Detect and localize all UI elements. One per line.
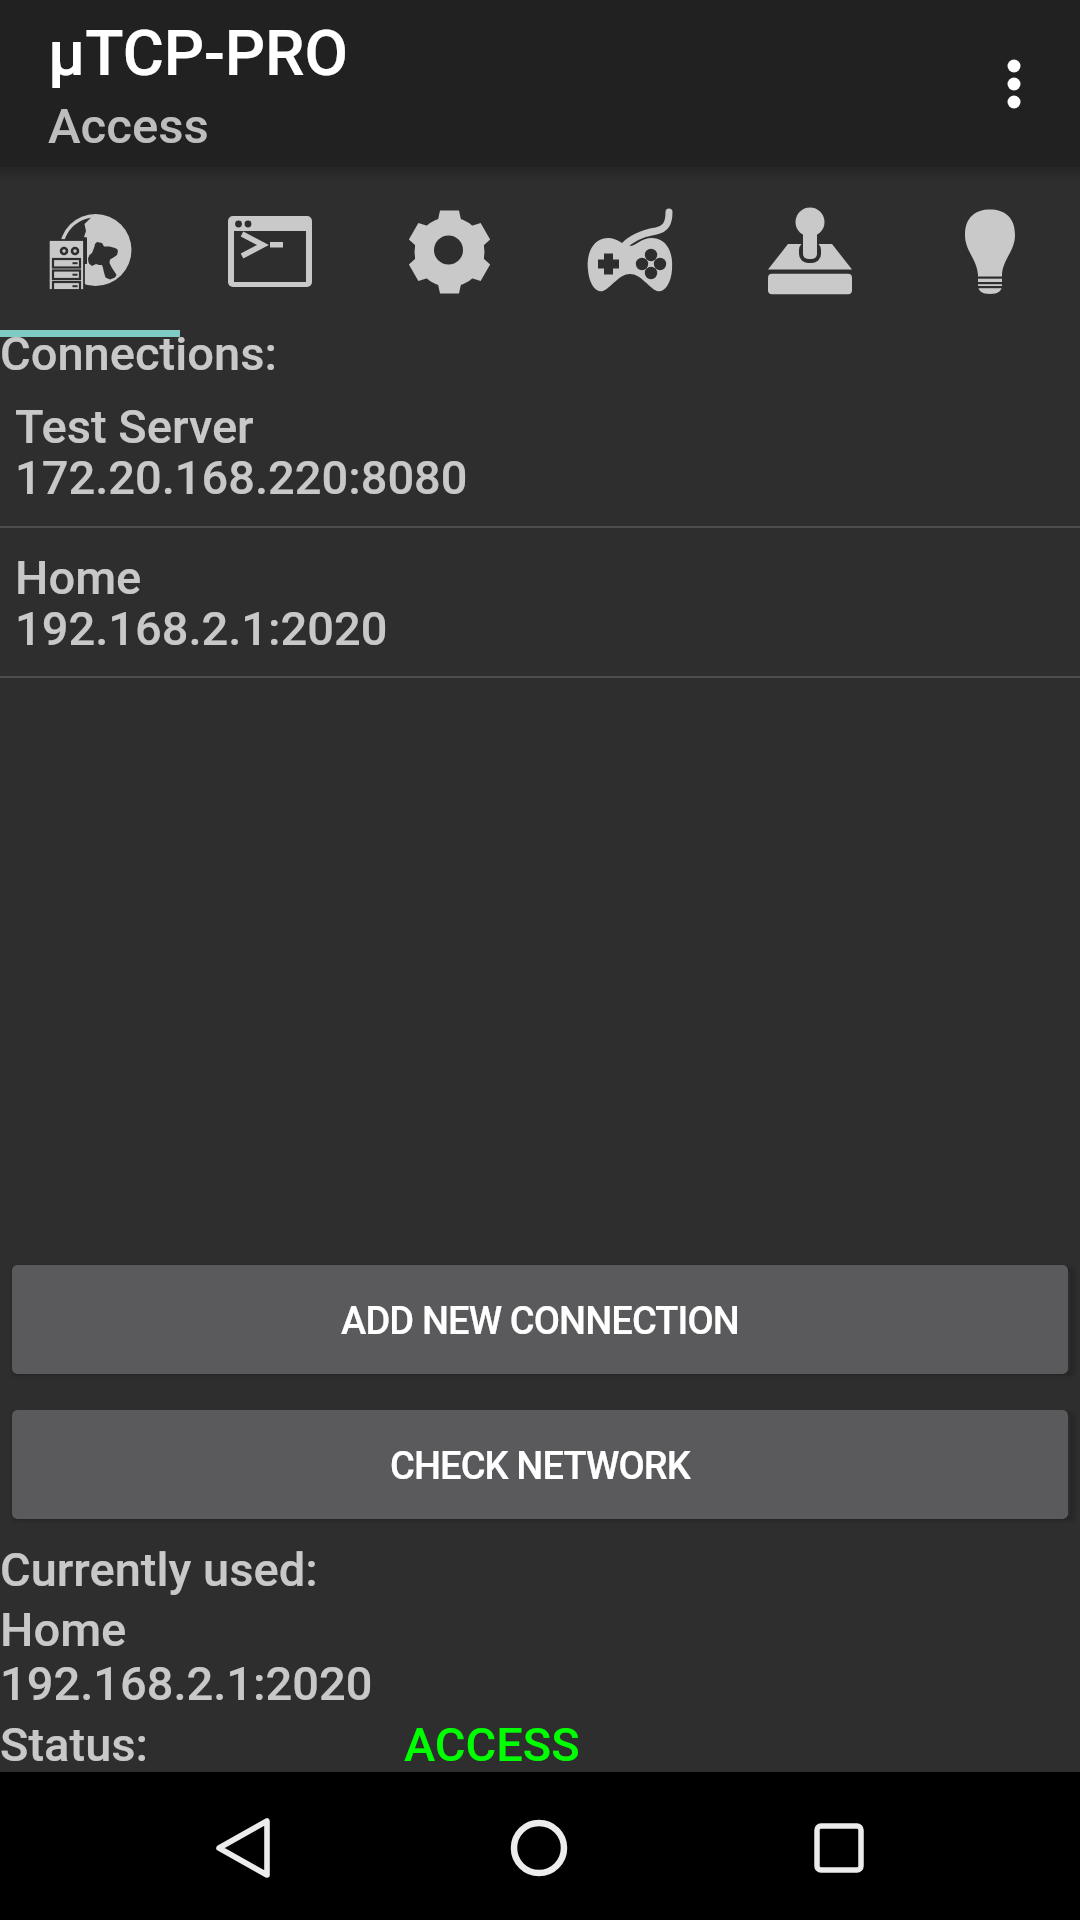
- staticText: Status:: [0, 1717, 148, 1772]
- button[interactable]: Test Server: [0, 377, 1080, 526]
- button[interactable]: Home: [0, 528, 1080, 677]
- button[interactable]: Joystick: [720, 167, 900, 336]
- button[interactable]: ADD NEW CONNECTION: [12, 1265, 1068, 1374]
- button[interactable]: Recent apps: [749, 1772, 929, 1920]
- button[interactable]: Light: [900, 167, 1080, 336]
- button[interactable]: Home: [449, 1772, 629, 1920]
- staticText: Test Server: [15, 399, 254, 454]
- button[interactable]: More options: [986, 38, 1042, 94]
- button[interactable]: Terminal: [180, 167, 360, 336]
- staticText: Home: [15, 550, 142, 605]
- staticText: Access: [48, 98, 209, 155]
- button[interactable]: CHECK NETWORK: [12, 1410, 1068, 1519]
- button[interactable]: Gamepad: [540, 167, 720, 336]
- staticText: 192.168.2.1:2020: [0, 1656, 373, 1711]
- button[interactable]: Servers: [0, 167, 180, 336]
- staticText: Home: [0, 1602, 127, 1657]
- button[interactable]: Settings: [360, 167, 540, 336]
- staticText: CHECK NETWORK: [390, 1444, 690, 1489]
- staticText: Connections:: [0, 326, 277, 381]
- staticText: µTCP-PRO: [48, 17, 348, 91]
- staticText: ACCESS: [404, 1717, 580, 1772]
- staticText: Currently used:: [0, 1542, 318, 1597]
- staticText: 192.168.2.1:2020: [15, 601, 388, 656]
- button[interactable]: Back: [153, 1772, 333, 1920]
- staticText: 172.20.168.220:8080: [15, 450, 468, 505]
- staticText: ADD NEW CONNECTION: [341, 1299, 739, 1344]
